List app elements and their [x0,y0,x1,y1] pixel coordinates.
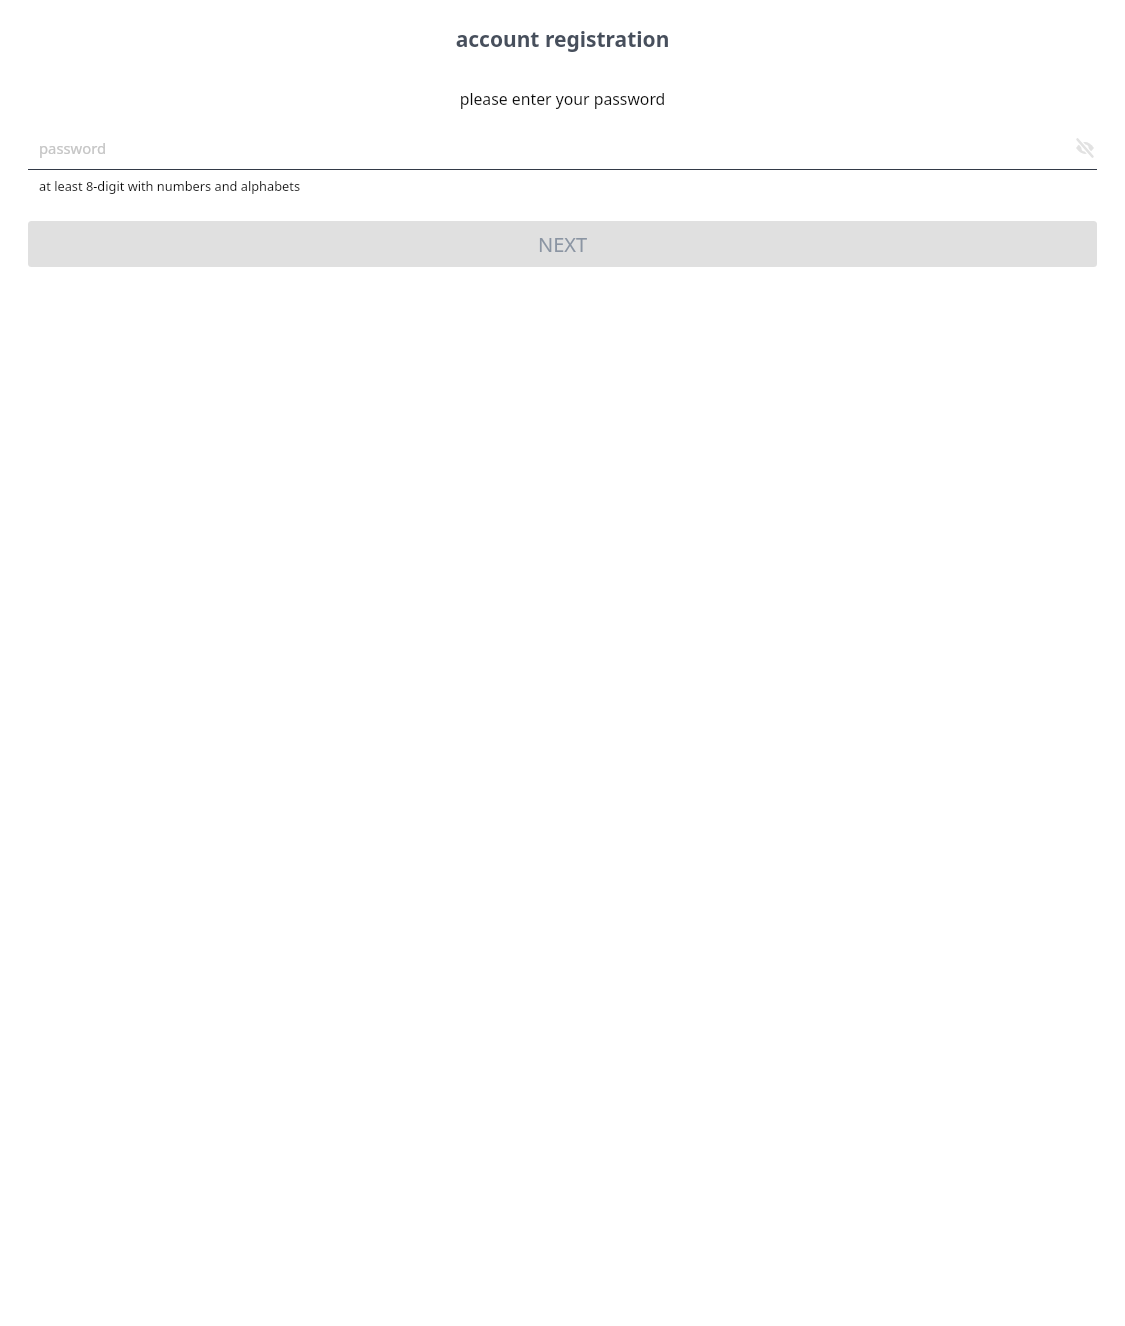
staticText: NEXT [538,231,588,258]
staticText: at least 8-digit with numbers and alphab… [39,177,1086,194]
staticText: password [39,138,1073,158]
button[interactable]: password [28,133,1097,163]
staticText: account registration [0,25,1125,54]
button[interactable]: NEXT [28,221,1097,267]
button[interactable]: Show password [1073,136,1097,160]
staticText: please enter your password [0,88,1125,110]
